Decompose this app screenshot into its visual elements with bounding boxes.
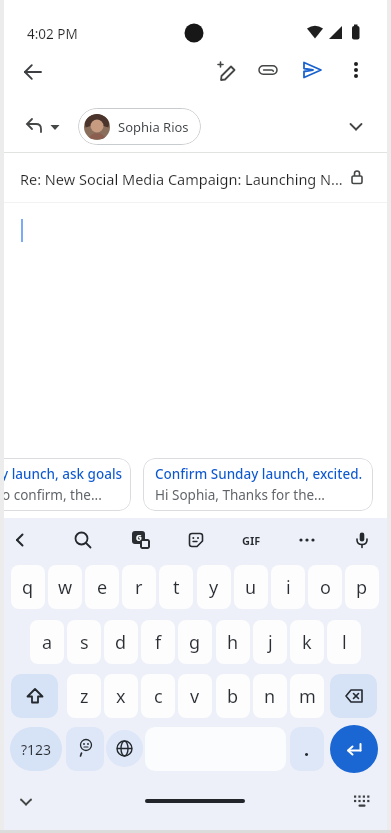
button[interactable]: m [290, 674, 324, 718]
button[interactable]: q [11, 565, 45, 609]
staticText: q [22, 575, 34, 600]
staticText: k [302, 630, 312, 655]
button[interactable]: w [48, 565, 82, 609]
button[interactable] [330, 674, 377, 718]
button[interactable] [205, 50, 245, 90]
button[interactable]: e [85, 565, 119, 609]
button[interactable]: c [141, 674, 175, 718]
staticText: x [116, 684, 126, 709]
staticText: G [136, 532, 142, 543]
button[interactable] [336, 50, 376, 90]
button[interactable] [248, 50, 288, 90]
button[interactable]: a [30, 620, 64, 664]
staticText: a [42, 630, 53, 655]
button[interactable] [342, 782, 382, 822]
button[interactable]: . [290, 727, 324, 771]
staticText: 4:02 PM [27, 25, 78, 43]
button[interactable] [66, 727, 104, 771]
staticText: w [58, 575, 73, 600]
button[interactable] [2, 522, 38, 558]
button[interactable] [292, 50, 332, 90]
button[interactable] [65, 522, 101, 558]
staticText: . [304, 737, 310, 762]
button[interactable]: b [216, 674, 250, 718]
staticText: l [342, 630, 347, 655]
button[interactable]: h [216, 620, 250, 664]
staticText: c [154, 684, 163, 709]
staticText: GIF [242, 533, 261, 548]
button[interactable]: z [67, 674, 101, 718]
button[interactable]: y [197, 565, 231, 609]
staticText: Confirm Sunday launch, excited. [155, 465, 363, 483]
staticText: o confirm, the... [2, 486, 102, 504]
staticText: n [264, 684, 276, 709]
button[interactable]: y launch, ask goals [0, 458, 131, 511]
staticText: u [245, 575, 257, 600]
staticText: g [189, 630, 201, 655]
button[interactable] [344, 522, 380, 558]
staticText: t [173, 575, 180, 600]
button[interactable]: GIF [233, 522, 269, 558]
staticText: y launch, ask goals [1, 465, 123, 483]
button[interactable]: ?123 [10, 727, 62, 771]
button[interactable] [330, 725, 378, 773]
button[interactable] [178, 522, 214, 558]
button[interactable]: g [178, 620, 212, 664]
staticText: m [299, 684, 316, 709]
button[interactable]: l [327, 620, 361, 664]
staticText: p [356, 575, 368, 600]
staticText: Hi Sophia, Thanks for the... [155, 486, 325, 504]
staticText: f [155, 630, 162, 655]
staticText: ?123 [21, 740, 52, 759]
button[interactable]: p [345, 565, 379, 609]
button[interactable]: k [290, 620, 324, 664]
staticText: Sophia Rios [118, 118, 189, 136]
button[interactable] [16, 107, 72, 145]
button[interactable] [13, 52, 53, 92]
button[interactable]: v [178, 674, 212, 718]
staticText: h [227, 630, 239, 655]
button[interactable]: d [104, 620, 138, 664]
staticText: d [115, 630, 127, 655]
button[interactable]: f [141, 620, 175, 664]
button[interactable]: G [123, 522, 159, 558]
button[interactable] [289, 522, 325, 558]
button[interactable]: i [271, 565, 305, 609]
button[interactable]: x [104, 674, 138, 718]
button[interactable]: u [234, 565, 268, 609]
button[interactable] [106, 730, 143, 767]
staticText: s [80, 630, 89, 655]
staticText: v [190, 684, 200, 709]
button[interactable] [11, 674, 58, 718]
button[interactable]: r [122, 565, 156, 609]
button[interactable] [6, 782, 46, 822]
staticText: y [209, 575, 219, 600]
staticText: j [268, 630, 273, 655]
staticText: z [80, 684, 89, 709]
staticText: e [97, 575, 108, 600]
staticText: Re: New Social Media Campaign: Launching… [20, 169, 350, 189]
staticText: b [227, 684, 239, 709]
button[interactable]: Sophia Rios [78, 108, 201, 145]
staticText: o [320, 575, 331, 600]
button[interactable]: o [308, 565, 342, 609]
button[interactable]: Confirm Sunday launch, excited. [143, 458, 373, 511]
button[interactable]: Re: New Social Media Campaign: Launching… [0, 153, 391, 202]
button[interactable]: j [253, 620, 287, 664]
staticText: i [286, 575, 291, 600]
button[interactable] [336, 106, 376, 146]
button[interactable]: t [159, 565, 193, 609]
button[interactable]: n [253, 674, 287, 718]
staticText: r [135, 575, 143, 600]
button[interactable]: s [67, 620, 101, 664]
